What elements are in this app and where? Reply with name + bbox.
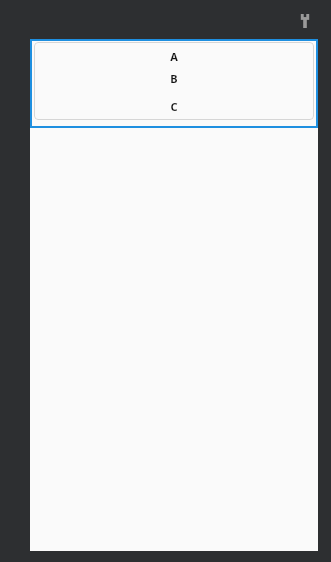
staticText: B — [170, 71, 178, 85]
staticText: C — [170, 99, 178, 113]
button[interactable]: C — [34, 99, 314, 113]
button[interactable]: A — [30, 39, 318, 128]
button[interactable]: Settings — [294, 10, 316, 32]
button[interactable]: B — [34, 71, 314, 85]
staticText: A — [170, 49, 178, 63]
button[interactable]: A — [34, 49, 314, 63]
